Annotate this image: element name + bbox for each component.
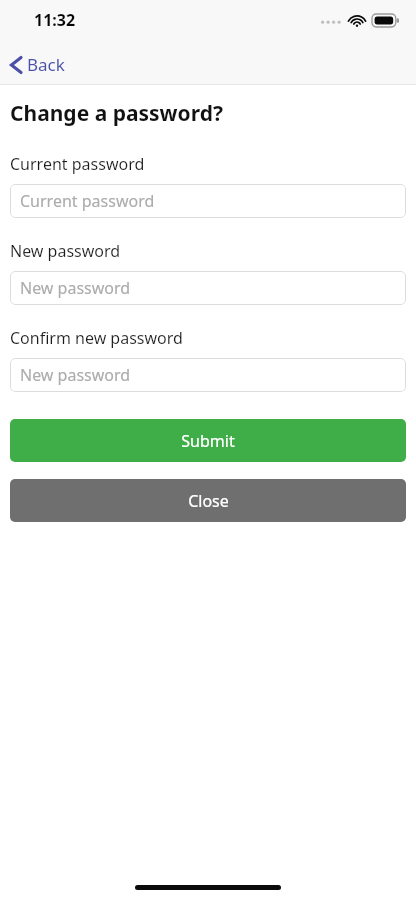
button[interactable]: New password — [10, 358, 406, 392]
staticText: Submit — [181, 430, 235, 452]
button[interactable]: Current password — [10, 184, 406, 218]
staticText: New password — [20, 277, 131, 299]
staticText: Current password — [10, 153, 145, 175]
staticText: Current password — [20, 190, 155, 212]
button[interactable]: Back — [0, 44, 79, 85]
staticText: Close — [188, 490, 229, 512]
staticText: Confirm new password — [10, 327, 183, 349]
button[interactable]: Submit — [10, 419, 406, 462]
staticText: 11:32 — [34, 9, 76, 31]
staticText: New password — [20, 364, 131, 386]
staticText: New password — [10, 240, 121, 262]
button[interactable]: New password — [10, 271, 406, 305]
staticText: Change a password? — [10, 99, 223, 128]
button[interactable]: Close — [10, 479, 406, 522]
staticText: Back — [27, 53, 65, 76]
